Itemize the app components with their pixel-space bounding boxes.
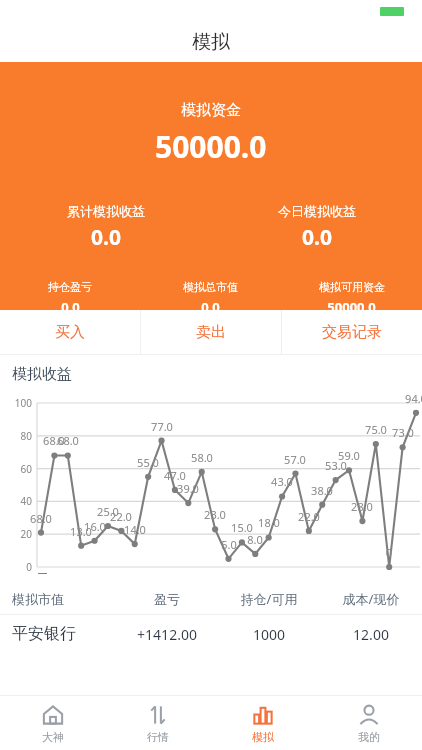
staticText: 57.0	[281, 452, 309, 467]
staticText: 100	[4, 396, 32, 410]
button[interactable]: 大神	[0, 696, 105, 750]
staticText: 20	[4, 527, 32, 541]
button[interactable]: 卖出	[141, 310, 281, 354]
staticText: 16.0	[81, 519, 109, 534]
staticText: 0	[375, 545, 403, 560]
staticText: 23.0	[201, 507, 229, 522]
staticText: 38.0	[308, 483, 336, 498]
staticText: +1412.00	[116, 625, 218, 644]
staticText: 58.0	[188, 450, 216, 465]
staticText: 28.0	[348, 499, 376, 514]
button[interactable]: 行情	[105, 696, 210, 750]
staticText: 53.0	[322, 458, 350, 473]
staticText: 模拟	[252, 730, 274, 744]
staticText: 94.0	[402, 391, 422, 406]
staticText: 55.0	[134, 455, 162, 470]
staticText: 行情	[147, 730, 169, 744]
staticText: 22.0	[107, 509, 135, 524]
staticText: 22.0	[295, 509, 323, 524]
staticText: 平安银行	[12, 624, 116, 644]
staticText: 模拟可用资金	[319, 280, 385, 294]
staticText: 模拟总市值	[183, 280, 238, 294]
staticText: 25.0	[94, 504, 122, 519]
staticText: 12.00	[320, 625, 422, 644]
staticText: 0.0	[302, 223, 332, 252]
staticText: 盈亏	[116, 591, 218, 607]
staticText: 我的	[358, 730, 380, 744]
staticText: 60	[4, 462, 32, 476]
staticText: 成本/现价	[320, 590, 422, 608]
staticText: 80	[4, 429, 32, 443]
staticText: 模拟市值	[12, 591, 116, 607]
staticText: 买入	[55, 323, 85, 342]
staticText: 18.0	[255, 515, 283, 530]
staticText: 0.0	[91, 223, 121, 252]
staticText: 50000.0	[155, 126, 267, 167]
staticText: 43.0	[268, 474, 296, 489]
staticText: 13.0	[67, 524, 95, 539]
staticText: 68.0	[40, 433, 68, 448]
staticText: 0.0	[61, 298, 80, 310]
staticText: 持仓/可用	[218, 590, 320, 608]
button[interactable]: 平安银行	[0, 615, 422, 653]
button[interactable]: 交易记录	[282, 310, 422, 354]
button[interactable]: 我的	[316, 696, 422, 750]
button[interactable]: 买入	[0, 310, 140, 354]
staticText: 15.0	[228, 520, 256, 535]
staticText: 大神	[42, 730, 64, 744]
staticText: 1000	[218, 625, 320, 644]
staticText: 40	[4, 494, 32, 508]
staticText: 模拟资金	[181, 101, 241, 120]
staticText: 8.0	[241, 532, 269, 547]
staticText: 持仓盈亏	[48, 280, 92, 294]
staticText: 77.0	[148, 419, 176, 434]
staticText: 68.0	[27, 511, 55, 526]
staticText: 14.0	[121, 522, 149, 537]
staticText: 今日模拟收益	[278, 203, 356, 219]
staticText: 68.0	[54, 433, 82, 448]
staticText: 累计模拟收益	[67, 203, 145, 219]
staticText: 75.0	[362, 422, 390, 437]
staticText: 47.0	[161, 468, 189, 483]
staticText: 卖出	[196, 323, 226, 342]
staticText: 0.0	[201, 298, 220, 310]
staticText: 模拟	[192, 30, 230, 54]
staticText: 0	[4, 560, 32, 574]
staticText: 5.0	[215, 537, 243, 552]
staticText: 模拟收益	[12, 365, 72, 384]
staticText: 39.0	[174, 481, 202, 496]
button[interactable]: 模拟	[210, 696, 316, 750]
staticText: 50000.0	[327, 298, 376, 310]
staticText: 交易记录	[322, 323, 382, 342]
staticText: 73.0	[389, 425, 417, 440]
staticText: 59.0	[335, 448, 363, 463]
